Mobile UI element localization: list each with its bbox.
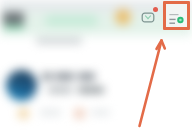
button[interactable]: Messages [141,12,155,23]
button[interactable]: Sort and filter [166,4,187,27]
